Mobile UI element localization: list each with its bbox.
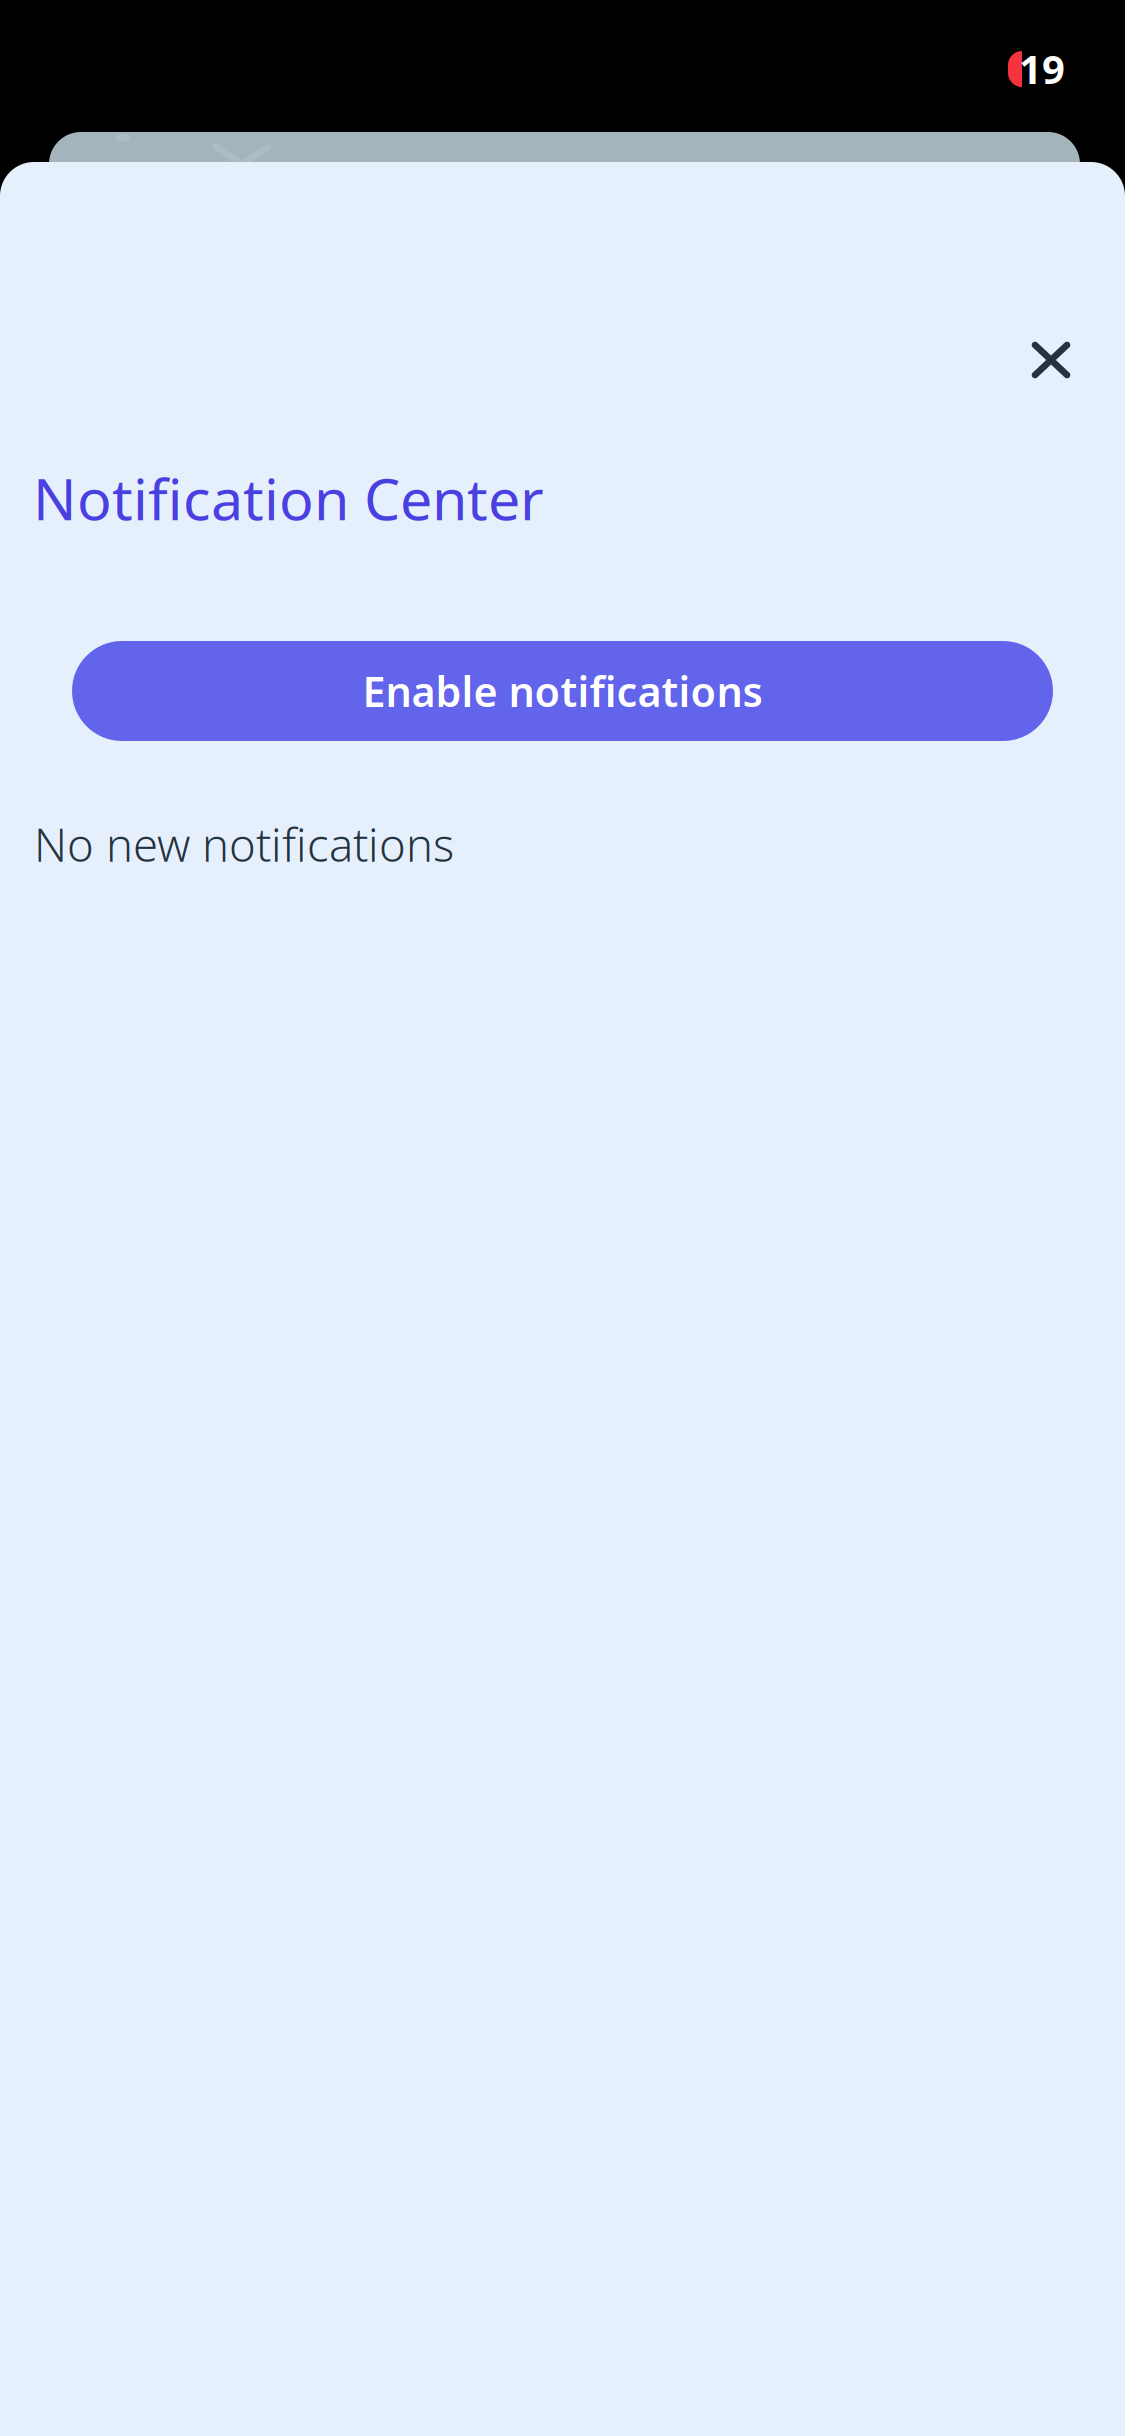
staticText: 19 — [1019, 42, 1065, 95]
staticText: No new notifications — [34, 814, 454, 874]
button[interactable]: Close — [997, 307, 1105, 413]
staticText: Enable notifications — [362, 664, 762, 718]
button[interactable]: Enable notifications — [72, 641, 1053, 741]
staticText: Notification Center — [33, 460, 544, 536]
